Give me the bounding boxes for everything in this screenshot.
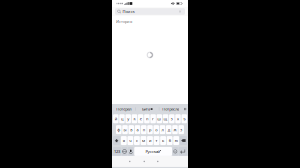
staticText: к: [133, 116, 135, 121]
button[interactable]: п: [141, 125, 146, 134]
button[interactable]: ь: [160, 136, 166, 145]
staticText: Потерял: [116, 106, 131, 112]
button[interactable]: Потрясла: [159, 105, 182, 113]
button[interactable]: з: [169, 114, 174, 123]
button[interactable]: й: [113, 114, 118, 123]
staticText: ц: [121, 116, 123, 121]
button[interactable]: щ: [163, 114, 168, 123]
button[interactable]: 123: [113, 147, 121, 156]
staticText: ы: [123, 127, 126, 132]
staticText: ж: [173, 127, 176, 132]
staticText: Потрясла: [162, 106, 179, 112]
button[interactable]: ф: [116, 125, 121, 134]
button[interactable]: и: [147, 136, 153, 145]
button[interactable]: ъ: [181, 114, 187, 123]
staticText: Бита: [142, 106, 150, 112]
button[interactable]: Русский: [134, 147, 172, 156]
button[interactable]: Ввод: [179, 147, 187, 156]
button[interactable]: ж: [172, 125, 178, 134]
button[interactable]: х: [175, 114, 181, 123]
button[interactable]: о: [153, 125, 159, 134]
button[interactable]: н: [144, 114, 150, 123]
staticText: щ: [164, 116, 168, 121]
staticText: м: [142, 138, 145, 143]
staticText: н: [146, 116, 148, 121]
staticText: р: [149, 127, 151, 132]
button[interactable]: м: [140, 136, 146, 145]
button[interactable]: с: [134, 136, 140, 145]
button[interactable]: ы: [122, 125, 128, 134]
button[interactable]: б: [167, 136, 172, 145]
button[interactable]: э: [178, 125, 184, 134]
button[interactable]: т: [154, 136, 159, 145]
staticText: и: [149, 138, 151, 143]
button[interactable]: ш: [157, 114, 162, 123]
staticText: у: [127, 116, 129, 121]
button[interactable]: ч: [127, 136, 133, 145]
staticText: ч: [129, 138, 131, 143]
button[interactable]: ц: [119, 114, 125, 123]
staticText: б: [169, 138, 171, 143]
button[interactable]: р: [147, 125, 153, 134]
button[interactable]: е: [138, 114, 143, 123]
button[interactable]: я: [121, 136, 127, 145]
button[interactable]: Диктовка: [128, 147, 134, 156]
staticText: п: [143, 127, 145, 132]
button[interactable]: к: [132, 114, 137, 123]
staticText: е: [140, 116, 142, 121]
button[interactable]: Сменить язык: [122, 147, 127, 156]
button[interactable]: Потерял: [112, 105, 135, 113]
button[interactable]: Поиск: [115, 8, 185, 15]
button[interactable]: л: [160, 125, 165, 134]
staticText: в: [130, 127, 132, 132]
staticText: История: [116, 19, 132, 24]
button[interactable]: Эмодзи: [173, 147, 178, 156]
staticText: х: [177, 116, 179, 121]
staticText: д: [168, 127, 170, 132]
button[interactable]: г: [150, 114, 156, 123]
staticText: Поиск: [123, 9, 135, 14]
button[interactable]: у: [125, 114, 131, 123]
staticText: 123: [114, 149, 120, 154]
staticText: ф: [117, 127, 120, 132]
staticText: с: [136, 138, 138, 143]
staticText: ш: [157, 116, 161, 121]
button[interactable]: ю: [173, 136, 179, 145]
staticText: г: [152, 116, 154, 121]
staticText: э: [180, 127, 182, 132]
button[interactable]: Удалить: [180, 136, 187, 145]
staticText: Русский: [145, 149, 159, 154]
button[interactable]: а: [135, 125, 140, 134]
button[interactable]: Ещё: [182, 105, 188, 113]
button[interactable]: д: [166, 125, 171, 134]
staticText: й: [115, 116, 117, 121]
button[interactable]: Shift: [113, 136, 120, 145]
staticText: т: [155, 138, 157, 143]
staticText: я: [123, 138, 125, 143]
staticText: з: [171, 116, 173, 121]
staticText: ъ: [183, 116, 185, 121]
staticText: о: [155, 127, 157, 132]
button[interactable]: в: [128, 125, 134, 134]
staticText: ь: [162, 138, 164, 143]
staticText: л: [161, 127, 163, 132]
staticText: ю: [175, 138, 178, 143]
staticText: а: [136, 127, 138, 132]
button[interactable]: Очистить: [177, 9, 183, 14]
